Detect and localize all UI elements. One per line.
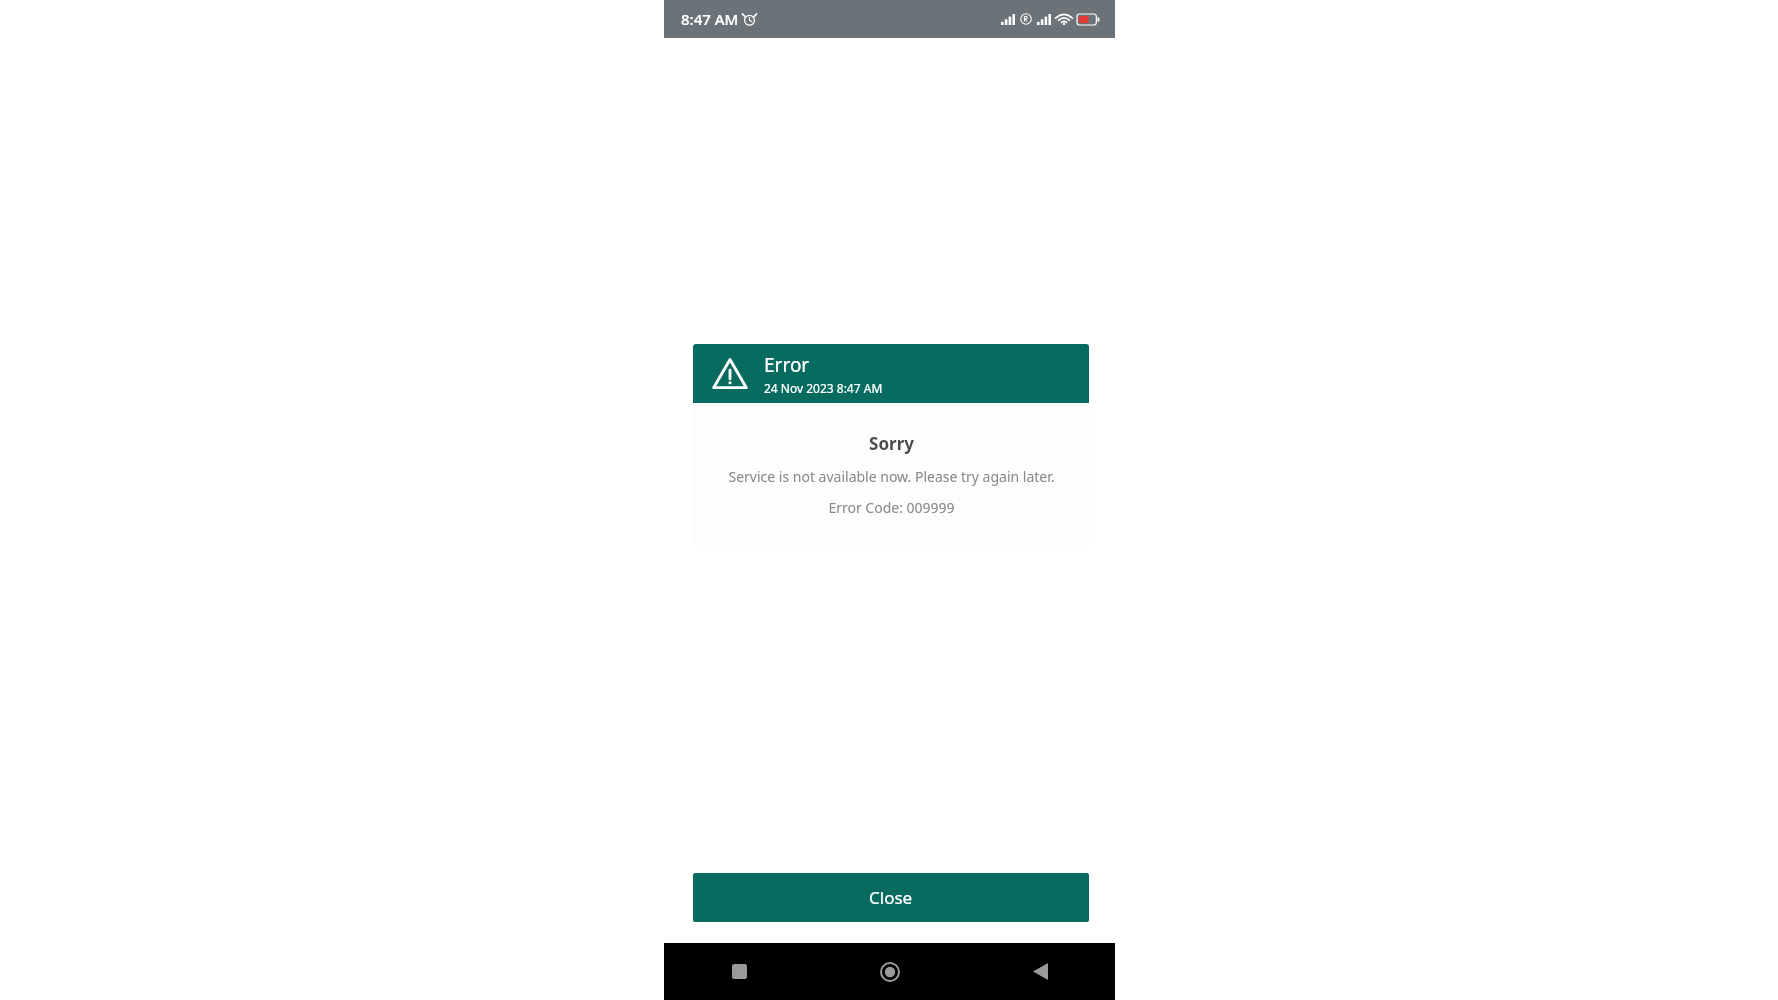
staticText: Service is not available now. Please try… <box>728 467 1055 486</box>
button[interactable]: Home <box>815 943 965 1000</box>
staticText: 24 Nov 2023 8:47 AM <box>764 380 883 396</box>
staticText: Sorry <box>869 432 914 455</box>
button[interactable]: Close <box>693 873 1089 922</box>
staticText: 8:47 AM <box>681 9 739 29</box>
staticText: Error Code: 009999 <box>828 498 955 517</box>
button[interactable]: Recents <box>664 943 815 1000</box>
staticText: Error <box>764 352 810 378</box>
button[interactable]: Back <box>965 943 1115 1000</box>
staticText: Close <box>869 886 913 909</box>
